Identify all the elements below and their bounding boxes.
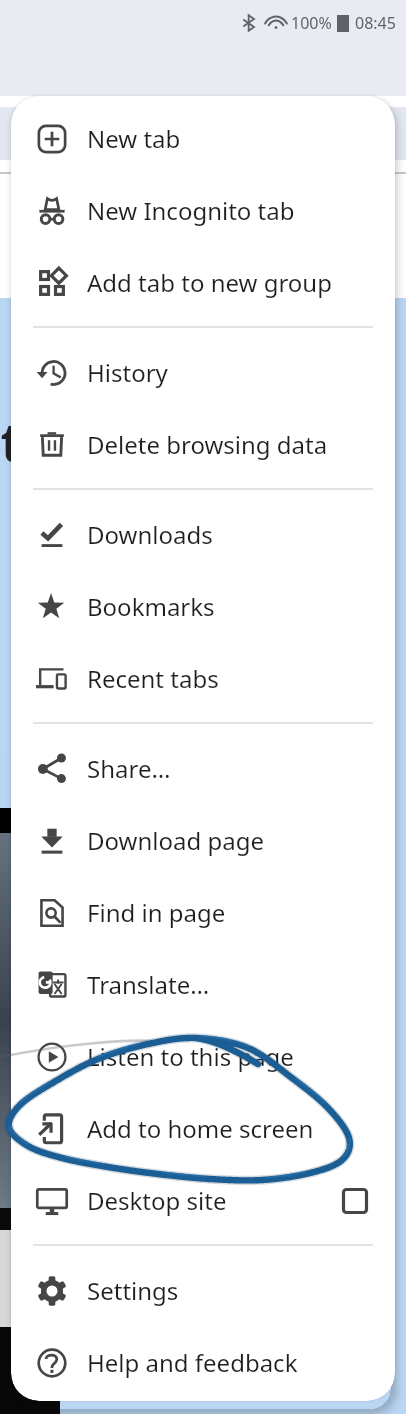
staticText: New Incognito tab: [87, 194, 295, 227]
staticText: Settings: [87, 1274, 179, 1307]
button[interactable]: New tab: [11, 102, 395, 174]
staticText: Downloads: [87, 518, 213, 551]
button[interactable]: New Incognito tab: [11, 174, 395, 246]
staticText: Add tab to new group: [87, 266, 332, 299]
button[interactable]: Bookmarks: [11, 570, 395, 642]
button[interactable]: Desktop site toggle: [342, 1188, 368, 1214]
staticText: Add to home screen: [87, 1112, 314, 1145]
staticText: 100%: [291, 12, 332, 34]
staticText: Recent tabs: [87, 662, 219, 695]
staticText: History: [87, 356, 168, 389]
button[interactable]: History: [11, 336, 395, 408]
button[interactable]: Recent tabs: [11, 642, 395, 714]
button[interactable]: Add to home screen: [11, 1092, 395, 1164]
staticText: Delete browsing data: [87, 428, 328, 461]
button[interactable]: Listen to this page: [11, 1020, 395, 1092]
staticText: Share…: [87, 752, 171, 785]
staticText: Translate…: [87, 968, 210, 1001]
button[interactable]: Translate…: [11, 948, 395, 1020]
button[interactable]: Find in page: [11, 876, 395, 948]
button[interactable]: Downloads: [11, 498, 395, 570]
button[interactable]: Help and feedback: [11, 1326, 395, 1398]
staticText: Download page: [87, 824, 264, 857]
button[interactable]: Desktop site: [11, 1164, 395, 1236]
staticText: 08:45: [355, 12, 396, 34]
button[interactable]: Delete browsing data: [11, 408, 395, 480]
staticText: Bookmarks: [87, 590, 215, 623]
button[interactable]: Share…: [11, 732, 395, 804]
button[interactable]: Settings: [11, 1254, 395, 1326]
staticText: Insight: [0, 404, 25, 478]
staticText: Find in page: [87, 896, 226, 929]
staticText: New tab: [87, 122, 181, 155]
staticText: Help and feedback: [87, 1346, 298, 1379]
staticText: Listen to this page: [87, 1040, 294, 1073]
button[interactable]: Add tab to new group: [11, 246, 395, 318]
button[interactable]: Download page: [11, 804, 395, 876]
staticText: Desktop site: [87, 1184, 227, 1217]
